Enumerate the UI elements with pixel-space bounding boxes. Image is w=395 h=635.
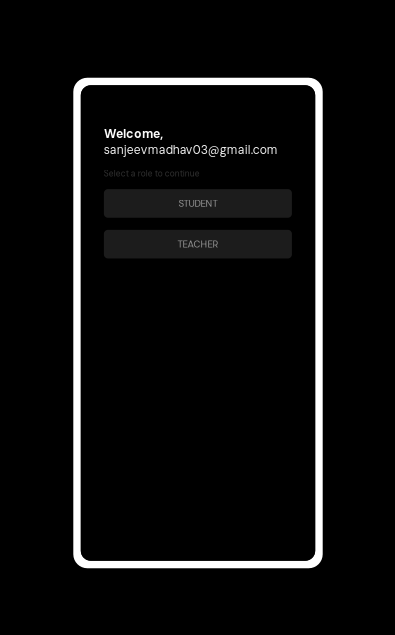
button[interactable]: TEACHER [104, 230, 292, 258]
button[interactable]: STUDENT [104, 189, 292, 218]
staticText: TEACHER [177, 238, 218, 250]
staticText: Select a role to continue [104, 168, 200, 179]
staticText: Welcome, [104, 126, 163, 142]
staticText: sanjeevmadhav03@gmail.com [104, 142, 278, 158]
staticText: STUDENT [178, 197, 217, 210]
